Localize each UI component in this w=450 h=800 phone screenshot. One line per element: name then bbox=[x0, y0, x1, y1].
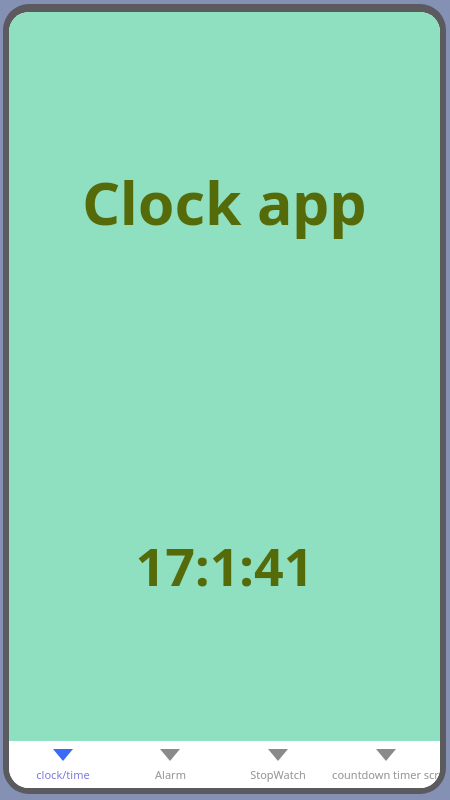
staticText: countdown timer screen bbox=[332, 767, 440, 782]
staticText: Clock app bbox=[9, 162, 440, 242]
staticText: StopWatch bbox=[250, 767, 306, 782]
other: countdown timer screen bbox=[376, 749, 396, 761]
staticText: clock/time bbox=[36, 767, 90, 782]
button[interactable]: clock/time bbox=[9, 741, 116, 788]
staticText: 17:1:41 bbox=[9, 530, 440, 601]
button[interactable]: StopWatch bbox=[224, 741, 332, 788]
other: StopWatch bbox=[268, 749, 288, 761]
other: clock/time bbox=[53, 749, 73, 761]
button[interactable]: Alarm bbox=[116, 741, 224, 788]
button[interactable]: countdown timer screen bbox=[332, 741, 440, 788]
staticText: Alarm bbox=[155, 767, 186, 782]
other: Alarm bbox=[160, 749, 180, 761]
